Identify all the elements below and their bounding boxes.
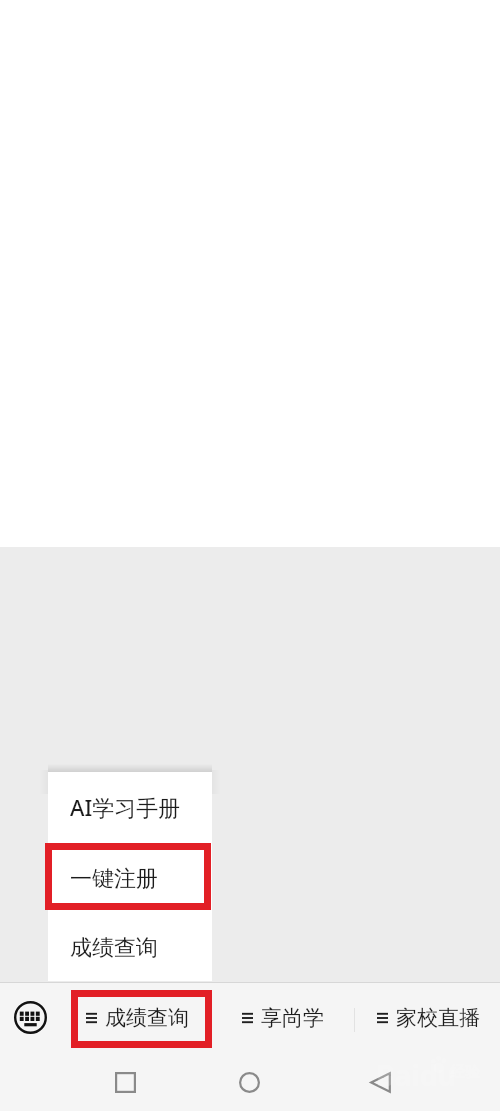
button[interactable]: AI学习手册 bbox=[48, 772, 212, 841]
staticText: 成绩查询 bbox=[105, 1005, 189, 1031]
button[interactable]: 享尚学 bbox=[210, 983, 356, 1053]
button[interactable]: 成绩查询 bbox=[64, 983, 210, 1053]
button[interactable]: Home bbox=[207, 1051, 291, 1111]
button[interactable]: Keyboard bbox=[0, 983, 64, 1053]
button[interactable]: Recents bbox=[83, 1051, 167, 1111]
staticText: 享尚学 bbox=[261, 1005, 324, 1031]
button[interactable]: 一键注册 bbox=[48, 844, 212, 914]
button[interactable]: 家校直播 bbox=[356, 983, 500, 1053]
staticText: 成绩查询 bbox=[70, 934, 158, 962]
button[interactable]: 成绩查询 bbox=[48, 916, 212, 979]
staticText: 一键注册 bbox=[70, 865, 158, 893]
staticText: AI学习手册 bbox=[70, 792, 181, 822]
staticText: Baidu bbox=[376, 1056, 456, 1094]
button[interactable]: Back bbox=[338, 1051, 422, 1111]
staticText: 家校直播 bbox=[396, 1005, 480, 1031]
